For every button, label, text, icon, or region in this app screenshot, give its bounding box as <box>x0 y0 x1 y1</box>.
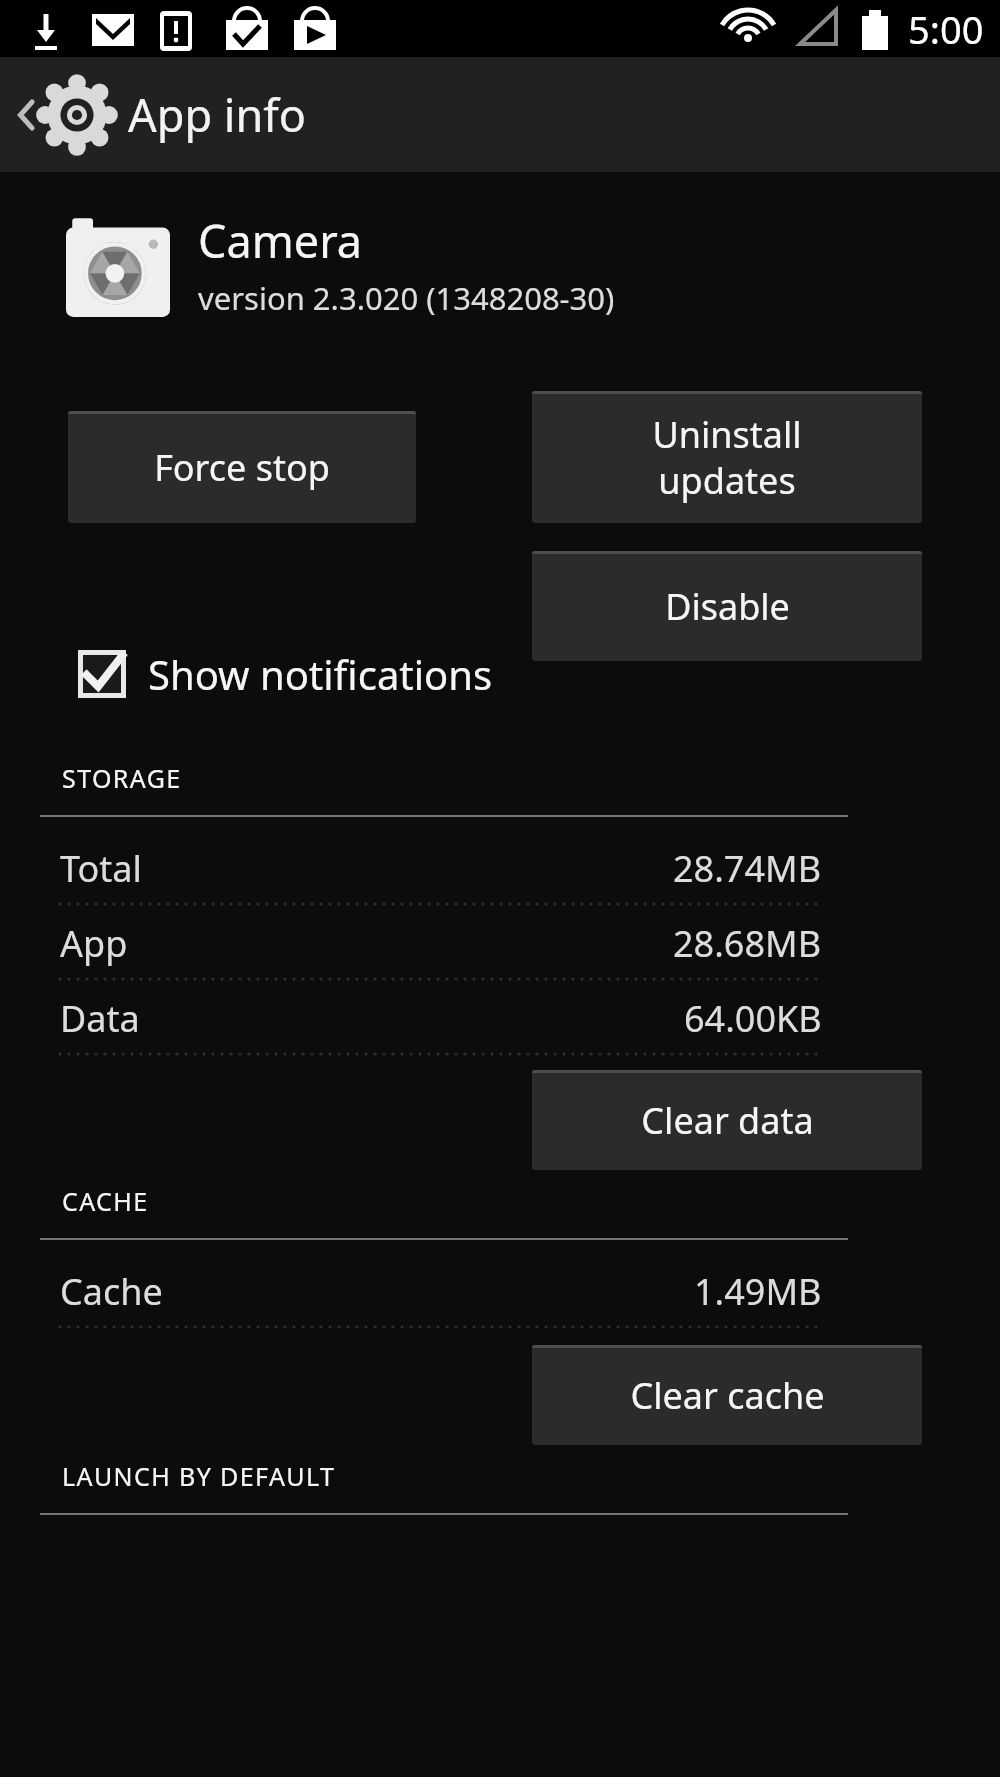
button[interactable]: Data <box>0 981 1000 1056</box>
staticText: Total <box>60 844 142 893</box>
button[interactable]: Disable <box>532 551 922 661</box>
staticText: Uninstall updates <box>652 410 802 505</box>
staticText: Clear cache <box>630 1371 825 1420</box>
staticText: Data <box>60 994 140 1043</box>
staticText: Camera <box>198 210 363 271</box>
staticText: App info <box>128 84 306 145</box>
staticText: Disable <box>665 582 790 631</box>
staticText: Clear data <box>641 1096 814 1145</box>
staticText: 64.00KB <box>684 994 822 1043</box>
staticText: Force stop <box>154 443 330 492</box>
button[interactable]: Navigate up <box>0 57 1000 172</box>
staticText: 28.74MB <box>673 844 822 893</box>
button[interactable]: Total <box>0 831 1000 906</box>
staticText: STORAGE <box>62 761 182 795</box>
staticText: Show notifications <box>148 647 493 701</box>
button[interactable]: Force stop <box>68 411 416 523</box>
button[interactable]: Clear data <box>532 1070 922 1170</box>
staticText: 28.68MB <box>673 919 822 968</box>
button[interactable]: Uninstall updates <box>532 391 922 523</box>
staticText: LAUNCH BY DEFAULT <box>62 1459 336 1493</box>
staticText: CACHE <box>62 1184 149 1218</box>
button[interactable]: Cache <box>0 1254 1000 1329</box>
staticText: App <box>60 919 128 968</box>
staticText: 5:00 <box>908 3 984 55</box>
button[interactable]: Clear cache <box>532 1345 922 1445</box>
staticText: 1.49MB <box>694 1267 822 1316</box>
staticText: Cache <box>60 1267 163 1316</box>
staticText: version 2.3.020 (1348208-30) <box>198 277 615 319</box>
button[interactable]: App <box>0 906 1000 981</box>
button[interactable]: Show notifications <box>78 635 1000 713</box>
